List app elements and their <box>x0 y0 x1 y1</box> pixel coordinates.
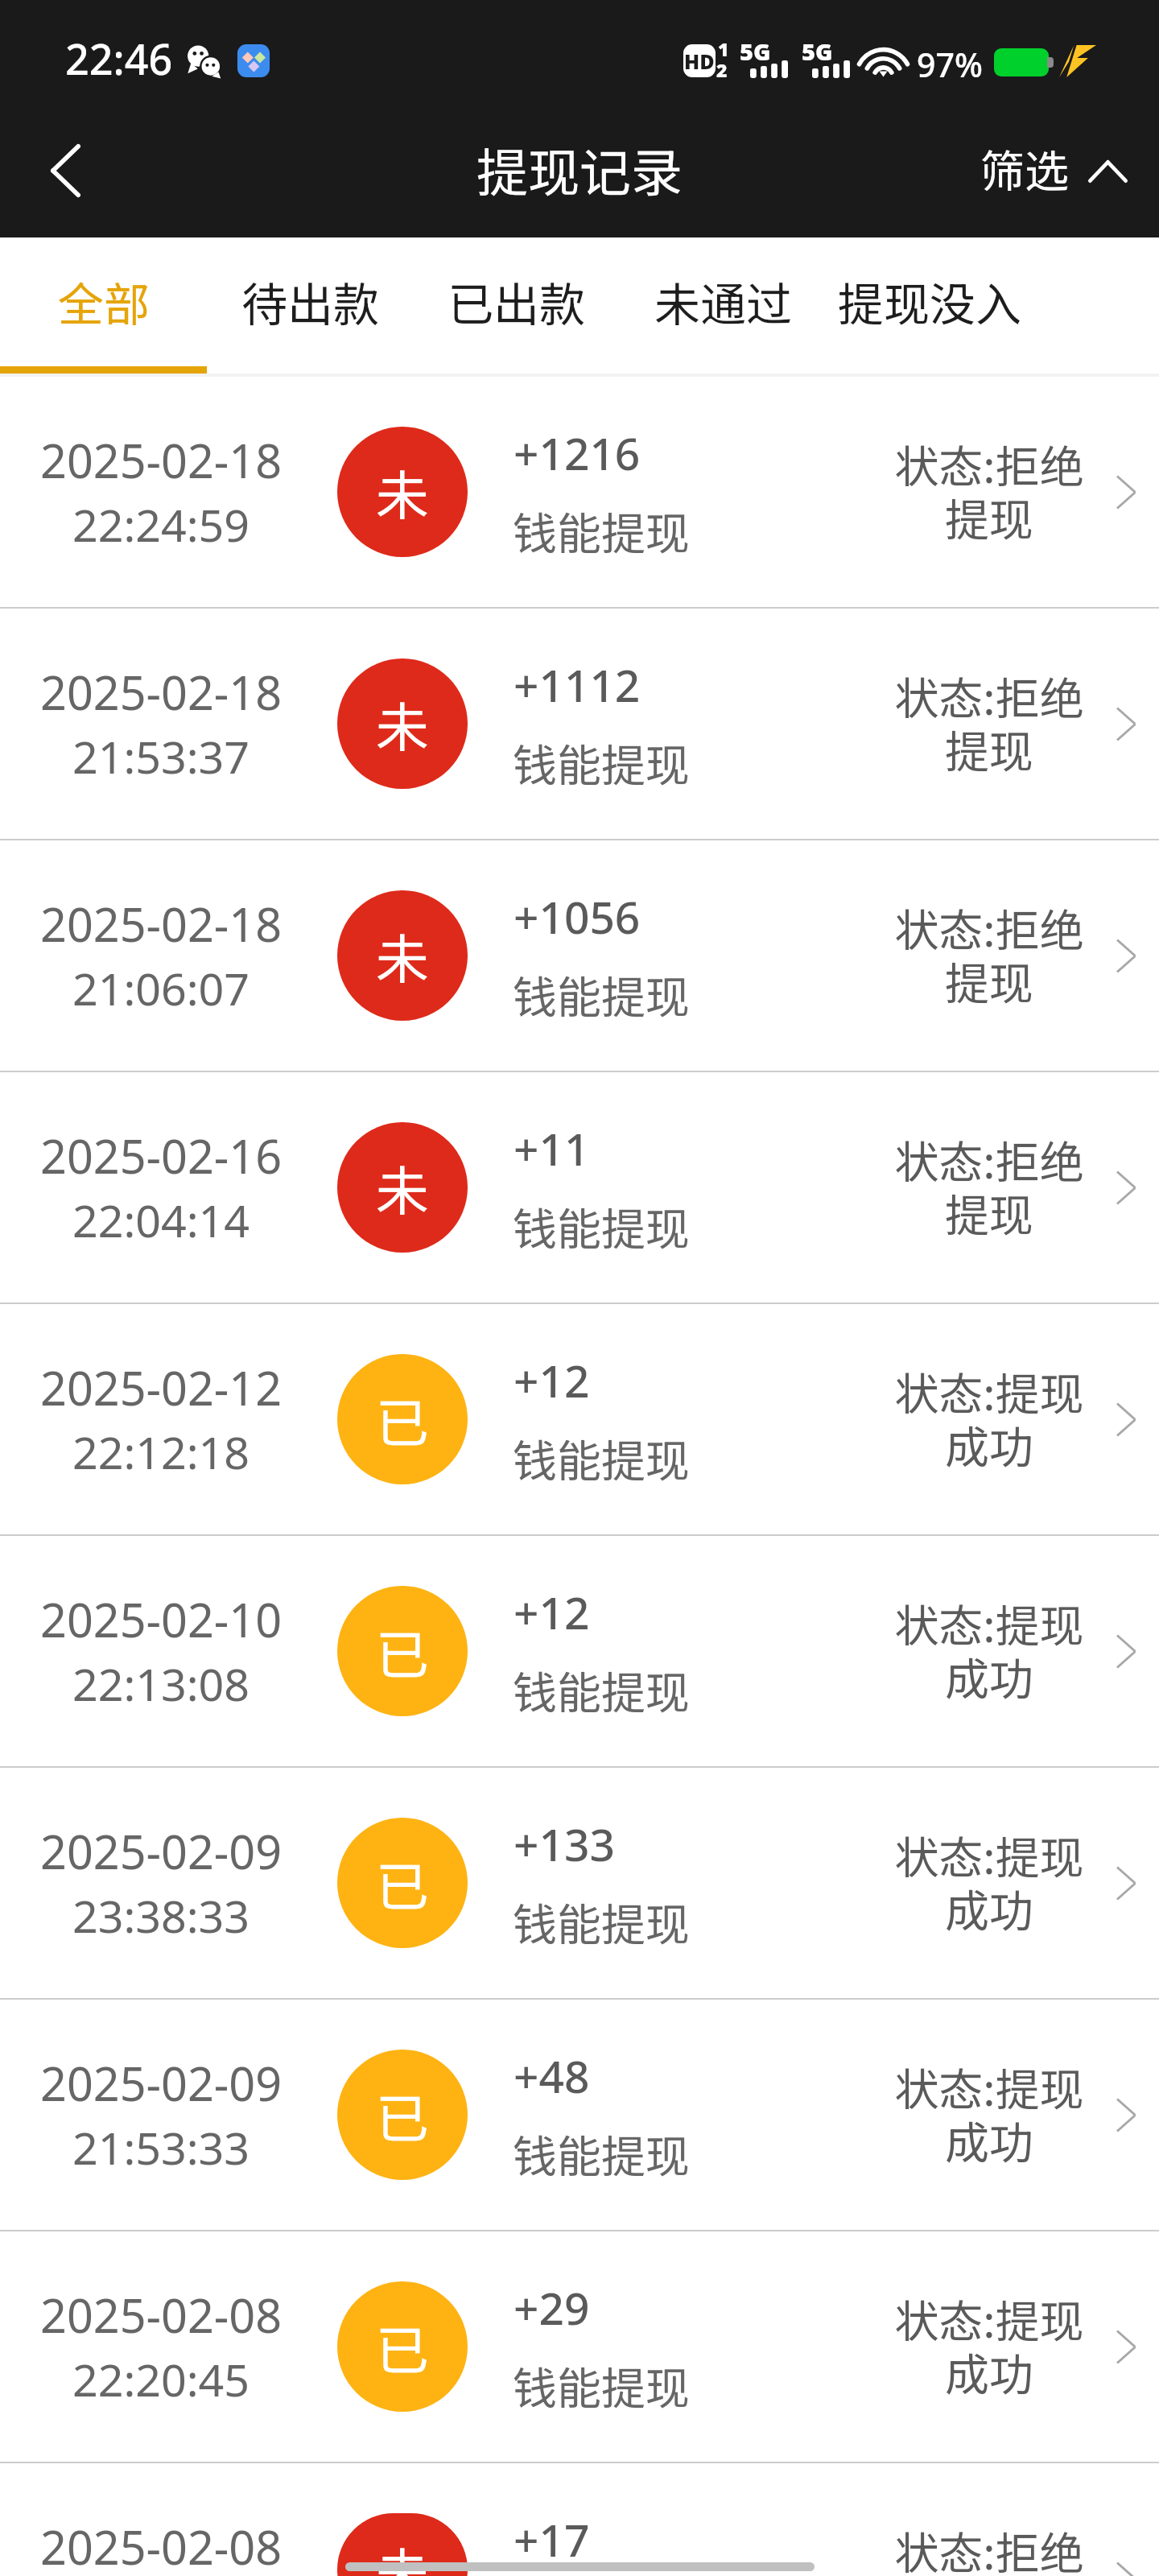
staticText: 5G <box>740 35 771 67</box>
staticText: 已 <box>376 2308 429 2385</box>
button[interactable]: 2025-02-18 <box>0 377 1159 607</box>
button[interactable]: 2025-02-08 <box>0 2231 1159 2462</box>
button[interactable]: 待出款 <box>207 239 414 364</box>
staticText: +1216 <box>514 423 641 483</box>
staticText: 钱能提现 <box>513 1194 691 1258</box>
staticText: 成功 <box>868 1412 1110 1476</box>
staticText: 2025-02-08 <box>40 2284 283 2347</box>
staticText: 已 <box>376 1844 429 1922</box>
staticText: 钱能提现 <box>513 2353 691 2417</box>
staticText: 97% <box>917 42 983 87</box>
staticText: 未 <box>376 685 429 762</box>
staticText: +1056 <box>514 886 641 947</box>
staticText: 提现 <box>868 2571 1110 2576</box>
staticText: 状态:拒绝 <box>868 895 1110 960</box>
button[interactable]: 2025-02-18 <box>0 840 1159 1071</box>
staticText: 已 <box>376 1612 429 1690</box>
staticText: 状态:提现 <box>868 2054 1110 2119</box>
staticText: 提现记录 <box>476 132 683 207</box>
staticText: 未通过 <box>654 268 792 335</box>
staticText: 状态:提现 <box>868 2286 1110 2351</box>
button[interactable]: 2025-02-09 <box>0 1768 1159 1998</box>
staticText: 22:12:18 <box>40 1422 282 1483</box>
staticText: 提现没入 <box>838 268 1021 335</box>
button[interactable]: 返回 <box>13 114 118 228</box>
staticText: 钱能提现 <box>513 1426 691 1490</box>
button[interactable]: 2025-02-16 <box>0 1072 1159 1302</box>
staticText: +12 <box>514 1350 590 1410</box>
button[interactable]: 提现没入 <box>826 239 1033 364</box>
staticText: 21:06:07 <box>40 958 282 1019</box>
staticText: 状态:提现 <box>868 1823 1110 1887</box>
staticText: 提现 <box>868 948 1110 1013</box>
button[interactable]: 全部 <box>0 239 207 364</box>
button[interactable]: 2025-02-08 <box>0 2463 1159 2576</box>
staticText: 成功 <box>868 2107 1110 2172</box>
staticText: 钱能提现 <box>513 962 691 1026</box>
staticText: 22:04:14 <box>40 1190 282 1251</box>
staticText: 状态:提现 <box>868 1591 1110 1655</box>
staticText: 钱能提现 <box>513 730 691 795</box>
button[interactable]: 2025-02-12 <box>0 1304 1159 1534</box>
staticText: 已 <box>376 2076 429 2153</box>
staticText: 提现 <box>868 1180 1110 1245</box>
staticText: 21:53:37 <box>40 726 282 787</box>
staticText: 成功 <box>868 2339 1110 2404</box>
staticText: 钱能提现 <box>513 1657 691 1722</box>
staticText: 钱能提现 <box>513 2121 691 2186</box>
staticText: 筛选 <box>980 136 1070 200</box>
staticText: 钱能提现 <box>513 498 691 563</box>
staticText: 2 <box>716 57 728 82</box>
staticText: +11 <box>514 1118 590 1179</box>
staticText: +12 <box>514 1582 590 1642</box>
staticText: 22:24:59 <box>40 494 282 555</box>
staticText: 状态:提现 <box>868 1359 1110 1423</box>
button[interactable]: 已出款 <box>413 239 620 364</box>
staticText: 待出款 <box>241 268 379 335</box>
staticText: 成功 <box>868 1876 1110 1940</box>
staticText: 成功 <box>868 1644 1110 1708</box>
staticText: 21:53:33 <box>40 2117 282 2178</box>
staticText: 23:38:33 <box>40 1885 282 1946</box>
staticText: 2025-02-09 <box>40 1820 283 1883</box>
staticText: 状态:拒绝 <box>868 663 1110 728</box>
staticText: +29 <box>514 2277 590 2338</box>
staticText: 2025-02-18 <box>40 429 283 492</box>
staticText: 未 <box>376 2531 429 2576</box>
staticText: 1 <box>718 36 729 61</box>
staticText: 2025-02-10 <box>40 1588 283 1651</box>
staticText: 未 <box>376 1149 429 1226</box>
staticText: +1112 <box>514 654 641 715</box>
staticText: 2025-02-18 <box>40 893 283 956</box>
staticText: 提现 <box>868 716 1110 781</box>
staticText: 22:13:08 <box>40 1653 282 1715</box>
staticText: 5G <box>802 35 833 67</box>
staticText: 2025-02-08 <box>40 2516 283 2576</box>
staticText: 已 <box>376 1381 429 1458</box>
staticText: 提现 <box>868 485 1110 549</box>
staticText: 22:46 <box>65 30 173 87</box>
staticText: +17 <box>514 2509 590 2570</box>
button[interactable]: 未通过 <box>620 239 827 364</box>
staticText: 2025-02-16 <box>40 1125 283 1187</box>
staticText: 未 <box>376 917 429 994</box>
button[interactable]: 筛选 <box>963 128 1145 208</box>
staticText: 钱能提现 <box>513 1889 691 1954</box>
staticText: 状态:拒绝 <box>868 2518 1110 2576</box>
staticText: 未 <box>376 453 429 530</box>
staticText: 已出款 <box>448 268 585 335</box>
button[interactable]: 2025-02-10 <box>0 1536 1159 1766</box>
staticText: 2025-02-12 <box>40 1356 283 1419</box>
staticText: +133 <box>514 1814 615 1874</box>
button[interactable]: 2025-02-09 <box>0 2000 1159 2230</box>
staticText: HD <box>684 47 715 75</box>
staticText: 2025-02-18 <box>40 661 283 724</box>
staticText: 2025-02-09 <box>40 2052 283 2115</box>
staticText: 状态:拒绝 <box>868 431 1110 496</box>
button[interactable]: 2025-02-18 <box>0 609 1159 839</box>
staticText: 状态:拒绝 <box>868 1127 1110 1191</box>
staticText: +48 <box>514 2046 590 2106</box>
staticText: 22:20:45 <box>40 2349 282 2410</box>
staticText: 全部 <box>58 268 150 335</box>
